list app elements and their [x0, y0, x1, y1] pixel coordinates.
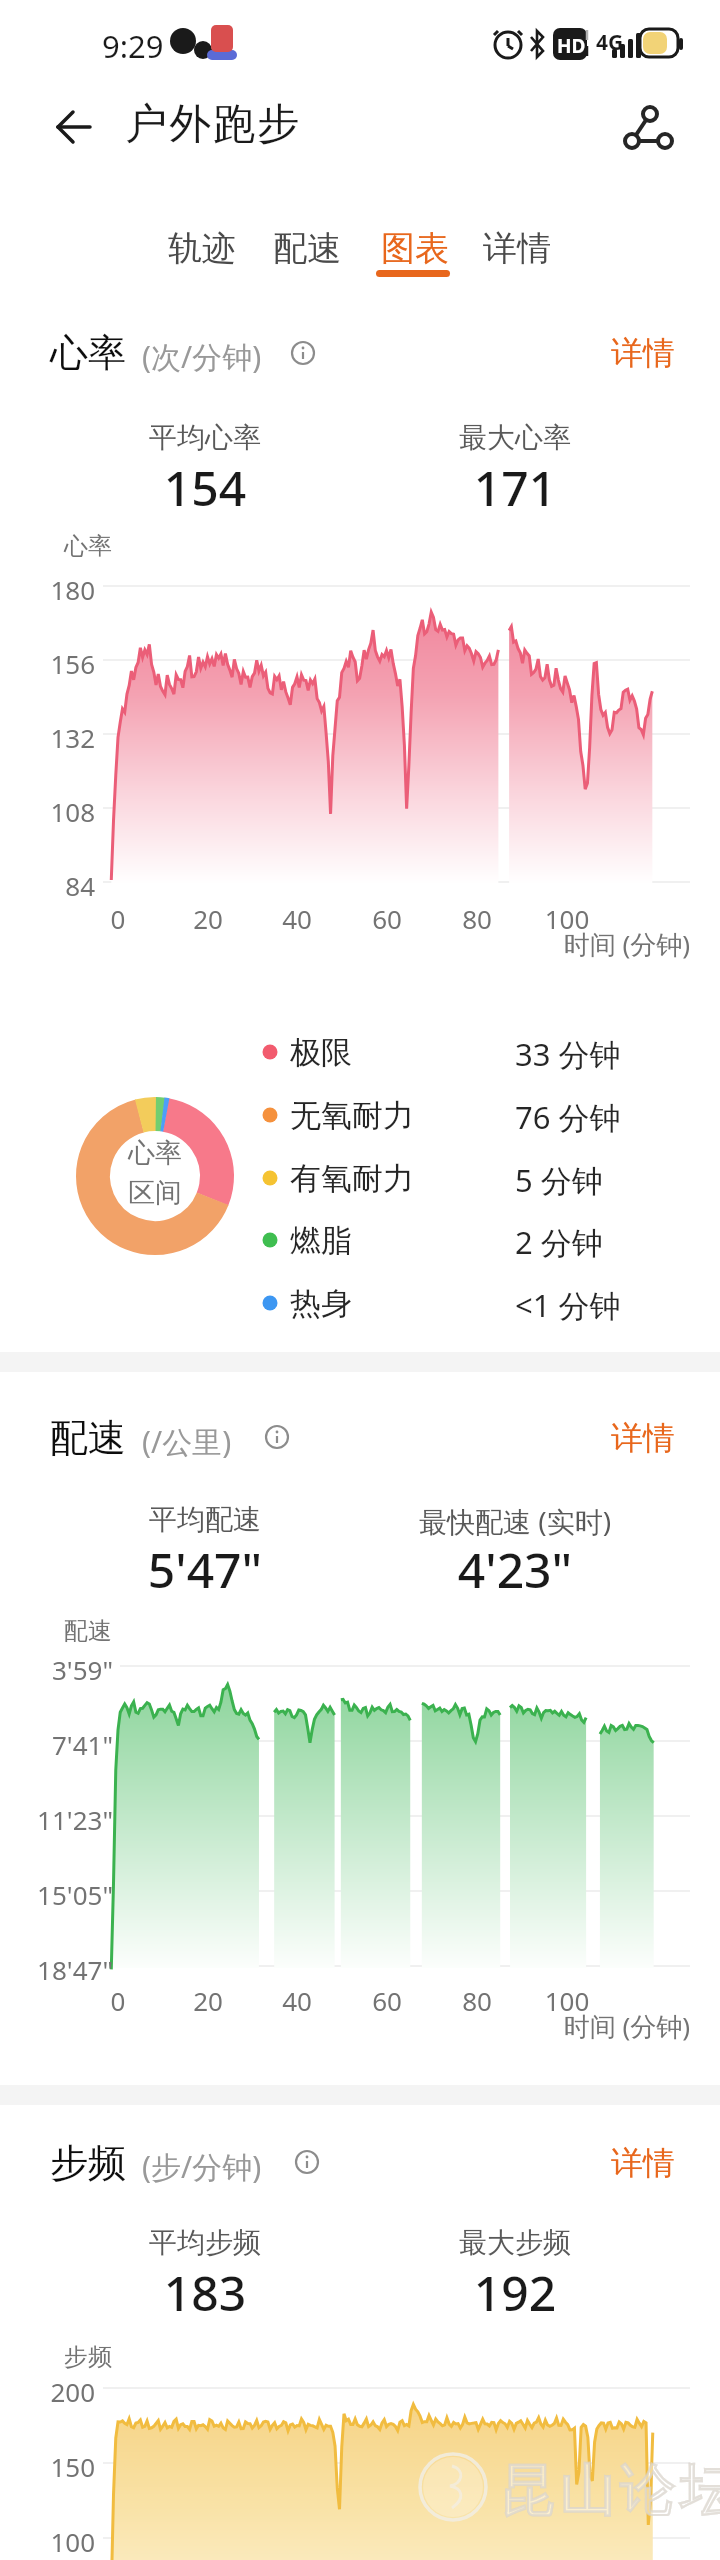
staticText: 84	[35, 868, 95, 903]
staticText: 100	[537, 1983, 597, 2018]
button[interactable]: 轨迹	[147, 218, 257, 278]
staticText: 15'05"	[25, 1877, 113, 1912]
staticText: 轨迹	[168, 227, 236, 270]
staticText: 详情	[611, 1418, 675, 1458]
staticText: 60	[357, 1983, 417, 2018]
staticText: HD	[557, 33, 586, 59]
staticText: 80	[447, 901, 507, 936]
staticText: 76 分钟	[515, 1096, 621, 1138]
staticText: 配速	[273, 227, 341, 270]
staticText: 心率	[55, 1136, 255, 1170]
staticText: 20	[178, 1983, 238, 2018]
staticText: 154	[55, 455, 355, 520]
staticText: 200	[35, 2374, 95, 2409]
staticText: 100	[537, 901, 597, 936]
staticText: 156	[35, 646, 95, 681]
staticText: 20	[178, 901, 238, 936]
staticText: 132	[35, 720, 95, 755]
staticText: 图表	[381, 227, 449, 270]
button[interactable]: 详情	[595, 2135, 690, 2190]
staticText: 平均心率	[55, 420, 355, 455]
staticText: 18'47"	[25, 1952, 113, 1987]
staticText: 户外跑步	[124, 98, 300, 151]
staticText: 心率	[64, 531, 112, 561]
staticText: 平均配速	[55, 1502, 355, 1537]
staticText: 0	[88, 901, 148, 936]
staticText: 详情	[483, 227, 551, 270]
staticText: 80	[447, 1983, 507, 2018]
staticText: 5 分钟	[515, 1159, 603, 1201]
staticText: 7'41"	[25, 1727, 113, 1762]
staticText: 5'47"	[55, 1537, 355, 1602]
staticText: 180	[35, 572, 95, 607]
staticText: 配速	[64, 1616, 112, 1646]
staticText: 9:29	[102, 25, 164, 67]
staticText: 60	[357, 901, 417, 936]
button[interactable]	[40, 92, 110, 162]
staticText: 183	[55, 2260, 355, 2325]
staticText: 心率	[50, 329, 126, 377]
staticText: 40	[267, 901, 327, 936]
staticText: 平均步频	[55, 2225, 355, 2260]
button[interactable]: 配速	[252, 218, 362, 278]
staticText: 燃脂	[290, 1221, 352, 1260]
staticText: 热身	[290, 1284, 352, 1323]
staticText: 步频	[50, 2139, 126, 2187]
staticText: 极限	[290, 1033, 352, 1072]
staticText: 3'59"	[25, 1652, 113, 1687]
staticText: 0	[88, 1983, 148, 2018]
staticText: 192	[365, 2260, 665, 2325]
staticText: 最大心率	[365, 420, 665, 455]
staticText: 最大步频	[365, 2225, 665, 2260]
staticText: 详情	[611, 333, 675, 373]
button[interactable]	[255, 1415, 299, 1459]
staticText: (次/分钟)	[142, 336, 262, 377]
staticText: 昆山论坛	[498, 2455, 720, 2526]
staticText: 4'23"	[365, 1537, 665, 1602]
staticText: 详情	[611, 2143, 675, 2183]
button[interactable]	[613, 92, 683, 162]
staticText: 11'23"	[25, 1802, 113, 1837]
staticText: 171	[365, 455, 665, 520]
staticText: 区间	[55, 1176, 255, 1210]
staticText: (步/分钟)	[142, 2146, 262, 2187]
staticText: 100	[35, 2524, 95, 2559]
button[interactable]: 图表	[360, 218, 470, 278]
staticText: 步频	[64, 2342, 112, 2372]
button[interactable]	[285, 2140, 329, 2184]
staticText: 2 分钟	[515, 1221, 603, 1263]
staticText: 40	[267, 1983, 327, 2018]
staticText: (/公里)	[142, 1421, 232, 1462]
staticText: 配速	[50, 1414, 126, 1462]
staticText: 昆山论坛	[498, 2455, 720, 2526]
staticText: 时间 (分钟)	[510, 926, 690, 962]
staticText: 33 分钟	[515, 1033, 621, 1075]
staticText: 时间 (分钟)	[510, 2008, 690, 2044]
button[interactable]	[281, 331, 325, 375]
staticText: 有氧耐力	[290, 1159, 414, 1198]
staticText: <1 分钟	[515, 1284, 621, 1326]
button[interactable]: 详情	[462, 218, 572, 278]
staticText: 无氧耐力	[290, 1096, 414, 1135]
button[interactable]: 详情	[595, 1410, 690, 1465]
staticText: 最快配速 (实时)	[365, 1502, 665, 1540]
staticText: 108	[35, 794, 95, 829]
staticText: 150	[35, 2449, 95, 2484]
button[interactable]: 详情	[595, 325, 690, 380]
staticText: 4G	[596, 28, 624, 57]
